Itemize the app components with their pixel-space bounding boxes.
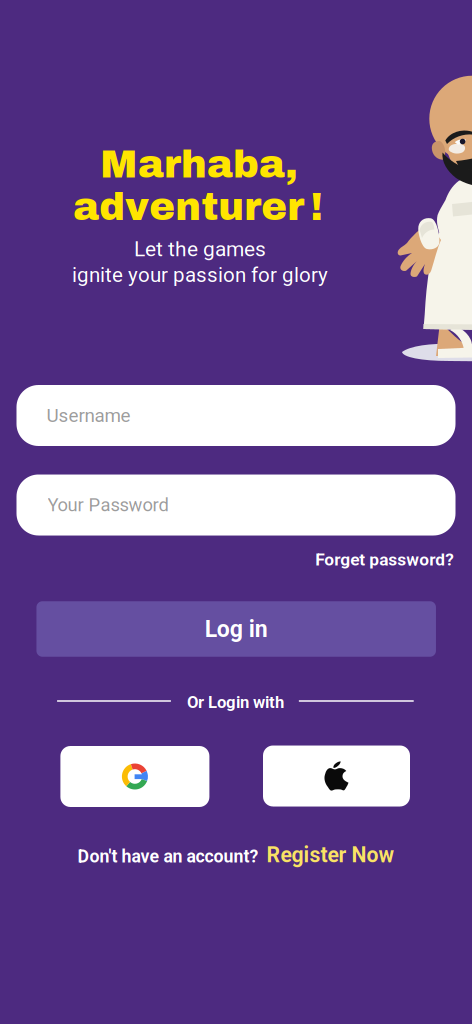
staticText: ignite your passion for glory [72, 263, 328, 287]
staticText: Don't have an account? [77, 846, 258, 867]
button[interactable]: Log in [36, 601, 436, 657]
button[interactable]: Sign in with Apple [263, 745, 410, 806]
staticText: Username [46, 404, 130, 426]
staticText: Forget password? [315, 549, 454, 570]
button[interactable]: Forget password? [315, 549, 454, 570]
staticText: Marhaba, [100, 143, 298, 186]
button[interactable]: Your Password [16, 474, 455, 535]
button[interactable]: Register Now [267, 843, 395, 867]
button[interactable]: Sign in with Google [60, 746, 209, 807]
staticText: Or Login with [187, 693, 284, 712]
staticText: Let the games [134, 237, 266, 261]
staticText: Your Password [47, 494, 168, 516]
button[interactable]: Username [16, 385, 455, 446]
staticText: Log in [205, 615, 268, 642]
staticText: Register Now [267, 843, 395, 867]
staticText: adventurer ! [73, 186, 323, 228]
